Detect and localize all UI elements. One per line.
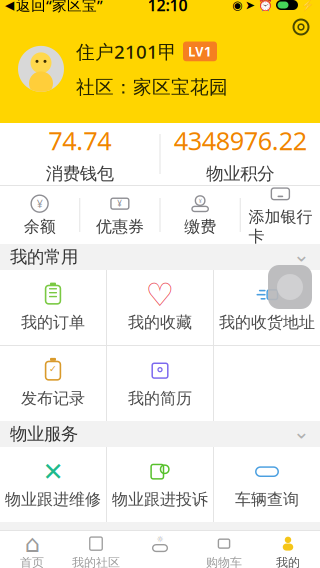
staticText: 发布记录 bbox=[21, 389, 85, 408]
staticText: 物业跟进投诉 bbox=[112, 490, 208, 509]
button[interactable]: 我的社区 bbox=[64, 531, 128, 568]
button[interactable]: 我的简历 bbox=[107, 346, 213, 421]
staticText: 物业服务 bbox=[10, 423, 78, 445]
button[interactable]: 我的常用 bbox=[0, 244, 320, 270]
button[interactable]: ¥ bbox=[160, 193, 240, 237]
staticText: 我的订单 bbox=[21, 313, 85, 332]
staticText: 我的收藏 bbox=[128, 313, 192, 332]
button[interactable]: 我的订单 bbox=[0, 270, 106, 345]
staticText: 我的收货地址 bbox=[219, 313, 315, 332]
button[interactable]: ⌂ bbox=[0, 531, 64, 568]
button[interactable]: 物业跟进投诉 bbox=[107, 447, 213, 522]
staticText: ➤ bbox=[245, 0, 255, 12]
staticText: ⌂ bbox=[24, 530, 39, 557]
staticText: 74.74 bbox=[48, 123, 111, 157]
button[interactable]: ☼ bbox=[128, 531, 192, 568]
staticText: 首页 bbox=[20, 555, 44, 568]
staticText: 物业跟进维修 bbox=[5, 490, 101, 509]
staticText: 我的简历 bbox=[128, 389, 192, 408]
staticText: 社区：家区宝花园 bbox=[76, 76, 228, 99]
button[interactable]: 购物车 bbox=[192, 531, 256, 568]
staticText: LV1 bbox=[188, 42, 212, 60]
staticText: ⚡ bbox=[301, 0, 314, 11]
staticText: 消费钱包 bbox=[46, 163, 114, 184]
staticText: 返回“家区宝” bbox=[16, 0, 103, 15]
staticText: ⌄ bbox=[293, 420, 310, 443]
staticText: ¥ bbox=[117, 198, 122, 209]
button[interactable]: 74.74 bbox=[0, 123, 159, 184]
staticText: 缴费 bbox=[184, 217, 216, 237]
button[interactable]: ✕ bbox=[0, 447, 106, 522]
button[interactable]: ¥ bbox=[80, 193, 159, 237]
staticText: ♡ bbox=[145, 276, 174, 313]
button[interactable]: ♡ bbox=[107, 270, 213, 345]
button[interactable]: 车辆查询 bbox=[214, 447, 320, 522]
button[interactable]: 物业服务 bbox=[0, 421, 320, 447]
button[interactable]: ¥ bbox=[0, 193, 79, 237]
staticText: 我的社区 bbox=[72, 555, 120, 568]
button[interactable]: ◀ bbox=[0, 0, 103, 15]
staticText: 住户2101甲 bbox=[76, 39, 177, 64]
staticText: 余额 bbox=[24, 217, 56, 237]
staticText: ⌄ bbox=[293, 243, 310, 266]
staticText: 购物车 bbox=[206, 555, 242, 568]
staticText: ¥ bbox=[37, 197, 43, 211]
staticText: 我的常用 bbox=[10, 246, 78, 268]
staticText: ◉ bbox=[232, 0, 242, 12]
button[interactable]: 4348976.22 bbox=[160, 123, 320, 184]
staticText: 优惠券 bbox=[96, 217, 144, 237]
staticText: ⏰ bbox=[258, 0, 273, 12]
staticText: ¥ bbox=[199, 197, 202, 204]
staticText: ✕ bbox=[42, 457, 63, 486]
staticText: ☼ bbox=[156, 535, 163, 544]
staticText: 我的 bbox=[276, 555, 300, 568]
staticText: 4348976.22 bbox=[174, 123, 307, 157]
button[interactable]: ✓ bbox=[0, 346, 106, 421]
staticText: 12:10 bbox=[147, 0, 187, 16]
staticText: 添加银行卡 bbox=[248, 207, 312, 246]
button[interactable]: 设置 bbox=[292, 18, 320, 36]
staticText: 物业积分 bbox=[206, 163, 274, 184]
staticText: ✓ bbox=[49, 363, 57, 374]
button[interactable]: 我的 bbox=[256, 531, 320, 568]
button[interactable]: 添加银行卡 bbox=[241, 184, 320, 246]
button[interactable]: 我的收货地址 bbox=[214, 270, 320, 345]
staticText: 车辆查询 bbox=[235, 490, 299, 509]
staticText: ◀ bbox=[5, 0, 14, 12]
